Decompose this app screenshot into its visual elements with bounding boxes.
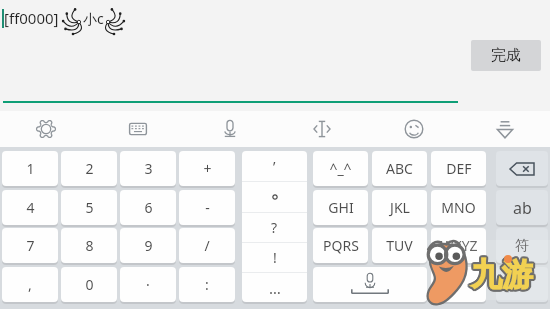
button[interactable]: JKL xyxy=(372,190,427,225)
staticText: 0 xyxy=(85,275,94,294)
staticText: : xyxy=(205,275,209,294)
staticText: GHI xyxy=(328,198,354,217)
button[interactable]: : xyxy=(179,267,235,302)
staticText: ABC xyxy=(386,159,413,178)
button[interactable]: 7 xyxy=(2,228,58,263)
staticText: + xyxy=(203,159,212,178)
button[interactable]: / xyxy=(179,228,235,263)
staticText: 8 xyxy=(85,236,94,255)
staticText: 九游 xyxy=(471,257,533,296)
button[interactable]: ^_^ xyxy=(313,151,368,186)
staticText: 2 xyxy=(85,159,94,178)
staticText: … xyxy=(269,278,281,298)
button[interactable]: Delete xyxy=(496,151,548,186)
button[interactable]: + xyxy=(179,151,235,186)
staticText: 九游 xyxy=(471,253,533,292)
button[interactable]: , xyxy=(2,267,58,302)
staticText: 符 xyxy=(515,237,529,255)
staticText: TUV xyxy=(386,236,413,255)
staticText: WXYZ xyxy=(440,236,478,255)
staticText: [ff0000] xyxy=(4,8,59,28)
button[interactable]: MNO xyxy=(431,190,486,225)
staticText: 九游 xyxy=(470,254,532,293)
staticText: 6 xyxy=(144,198,153,217)
staticText: 7 xyxy=(26,236,35,255)
staticText: 九游 xyxy=(472,256,534,295)
staticText: 5 xyxy=(85,198,94,217)
button[interactable]: Settings xyxy=(0,111,92,147)
staticText: 3 xyxy=(144,159,153,178)
button[interactable]: 0 xyxy=(61,267,117,302)
staticText: ^_^ xyxy=(329,159,352,178)
staticText: MNO xyxy=(441,198,476,217)
staticText: - xyxy=(205,198,210,217)
button[interactable]: 9 xyxy=(120,228,176,263)
staticText: 九游 xyxy=(473,255,535,294)
button[interactable]: ? xyxy=(242,213,307,242)
staticText: DEF xyxy=(446,159,472,178)
button[interactable]: ! xyxy=(242,243,307,272)
button[interactable]: 2 xyxy=(61,151,117,186)
button[interactable]: - xyxy=(179,190,235,225)
staticText: · xyxy=(146,275,150,294)
button[interactable] xyxy=(431,267,486,302)
button[interactable]: Space xyxy=(313,267,427,302)
staticText: JKL xyxy=(390,198,410,217)
button[interactable]: Enter xyxy=(496,267,548,302)
staticText: 九游 xyxy=(470,253,532,292)
staticText: ’ xyxy=(273,157,276,176)
staticText: 4 xyxy=(26,198,35,217)
button[interactable]: 完成 xyxy=(471,40,541,71)
button[interactable]: 3 xyxy=(120,151,176,186)
button[interactable]: Emoji xyxy=(368,111,460,147)
button[interactable]: Switch keyboard xyxy=(92,111,184,147)
button[interactable]: · xyxy=(120,267,176,302)
staticText: 完成 xyxy=(491,46,521,65)
staticText: 九游 xyxy=(470,256,532,295)
button[interactable]: Move cursor xyxy=(276,111,368,147)
staticText: , xyxy=(28,275,32,294)
button[interactable]: 6 xyxy=(120,190,176,225)
button[interactable]: WXYZ xyxy=(431,228,486,263)
button[interactable]: … xyxy=(242,273,307,302)
button[interactable] xyxy=(242,182,307,212)
button[interactable]: 1 xyxy=(2,151,58,186)
button[interactable]: Hide keyboard xyxy=(460,111,550,147)
staticText: 九游 xyxy=(472,254,534,293)
button[interactable]: ab xyxy=(496,190,548,225)
staticText: 九游 xyxy=(470,257,532,296)
staticText: 九游 xyxy=(473,256,535,295)
staticText: 九游 xyxy=(469,254,531,293)
button[interactable]: DEF xyxy=(431,151,486,186)
staticText: 小c xyxy=(83,9,104,28)
button[interactable]: ’ xyxy=(242,151,307,181)
button[interactable]: Voice input xyxy=(184,111,276,147)
button[interactable]: 符 xyxy=(496,228,548,263)
staticText: 九游 xyxy=(469,256,531,295)
staticText: 9 xyxy=(144,236,153,255)
staticText: 九游 xyxy=(472,255,534,294)
button[interactable]: 5 xyxy=(61,190,117,225)
staticText: 九游 xyxy=(471,255,533,294)
button[interactable]: GHI xyxy=(313,190,368,225)
button[interactable]: 4 xyxy=(2,190,58,225)
staticText: 1 xyxy=(26,159,35,178)
staticText: 九游 xyxy=(471,254,533,293)
staticText: 九游 xyxy=(469,255,531,294)
staticText: 九游 xyxy=(473,254,535,293)
button[interactable]: ABC xyxy=(372,151,427,186)
staticText: ! xyxy=(273,248,277,267)
button[interactable]: PQRS xyxy=(313,228,368,263)
staticText: 九游 xyxy=(472,253,534,292)
staticText: ab xyxy=(513,197,532,219)
staticText: 九游 xyxy=(470,255,532,294)
staticText: / xyxy=(204,236,210,255)
button[interactable]: TUV xyxy=(372,228,427,263)
staticText: 九游 xyxy=(472,257,534,296)
staticText: 九游 xyxy=(471,256,533,295)
staticText: PQRS xyxy=(323,236,359,255)
button[interactable]: 8 xyxy=(61,228,117,263)
staticText: ? xyxy=(271,218,278,237)
